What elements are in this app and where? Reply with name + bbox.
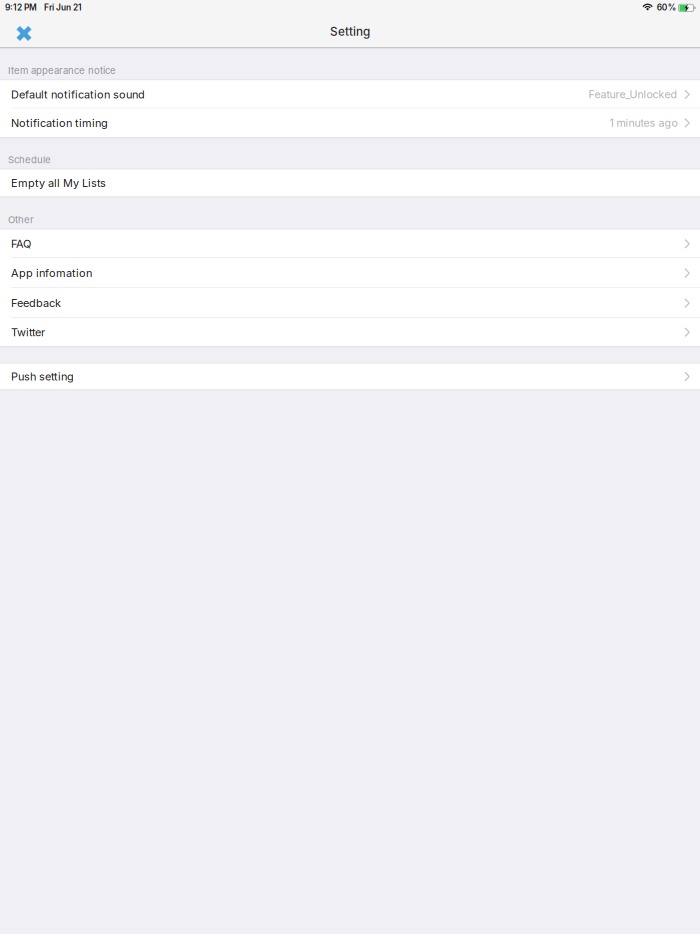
staticText: Fri Jun 21	[44, 2, 82, 13]
button[interactable]: Close	[9, 19, 39, 48]
button[interactable]: Push setting	[0, 364, 700, 389]
button[interactable]: Feedback	[0, 288, 700, 318]
staticText: Item appearance notice	[8, 65, 116, 76]
staticText: 1 minutes ago	[609, 116, 677, 129]
button[interactable]: FAQ	[0, 230, 700, 258]
staticText: Notification timing	[11, 116, 108, 129]
staticText: 60%	[657, 2, 676, 13]
staticText: 9:12 PM	[5, 2, 37, 13]
button[interactable]: Empty all My Lists	[0, 169, 700, 197]
staticText: Twitter	[11, 326, 45, 339]
staticText: App infomation	[11, 266, 92, 280]
staticText: Feature_Unlocked	[588, 88, 677, 101]
staticText: Setting	[330, 24, 370, 39]
button[interactable]: Notification timing	[0, 109, 700, 137]
button[interactable]: Default notification sound	[0, 80, 700, 109]
staticText: FAQ	[11, 237, 31, 250]
staticText: Other	[8, 214, 34, 226]
staticText: Schedule	[8, 154, 51, 165]
staticText: Default notification sound	[11, 88, 145, 101]
button[interactable]: App infomation	[0, 258, 700, 288]
staticText: Push setting	[11, 370, 74, 383]
staticText: Feedback	[11, 296, 61, 310]
staticText: Empty all My Lists	[11, 176, 106, 190]
button[interactable]: Twitter	[0, 318, 700, 346]
